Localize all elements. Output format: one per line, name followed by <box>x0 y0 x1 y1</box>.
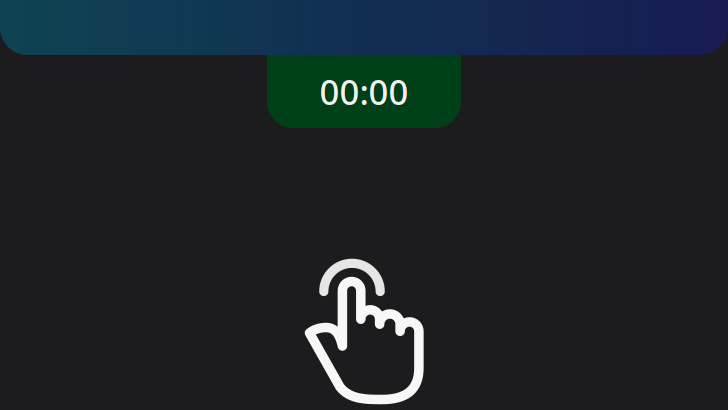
button[interactable]: Tap to start <box>304 256 424 406</box>
button[interactable]: 00:00 <box>267 55 461 128</box>
staticText: 00:00 <box>319 68 408 114</box>
